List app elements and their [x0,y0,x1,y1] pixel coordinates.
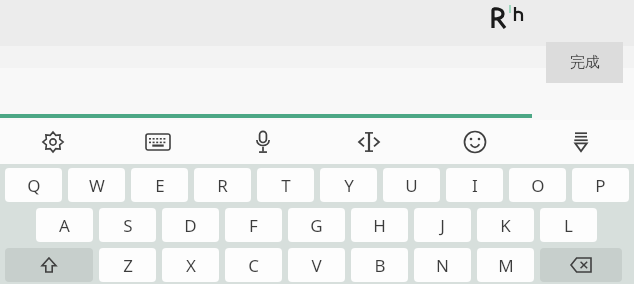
button[interactable]: L [540,208,597,242]
staticText: W [89,174,105,197]
button[interactable]: E [131,168,188,202]
button[interactable]: U [383,168,440,202]
button[interactable]: Q [5,168,62,202]
button[interactable]: G [288,208,345,242]
staticText: I [472,174,478,197]
staticText: F [249,214,258,237]
button[interactable]: P [572,168,629,202]
button[interactable]: O [509,168,566,202]
staticText: V [311,254,322,277]
button[interactable]: Z [99,248,156,282]
staticText: T [281,174,291,197]
button[interactable]: Settings [0,120,105,164]
staticText: D [184,214,197,237]
staticText: H [373,214,386,237]
staticText: J [440,214,445,237]
button[interactable]: F [225,208,282,242]
staticText: 完成 [570,53,600,72]
button[interactable]: A [36,208,93,242]
button[interactable]: 完成 [546,42,623,83]
staticText: U [405,174,418,197]
button[interactable]: W [68,168,125,202]
button[interactable]: D [162,208,219,242]
button[interactable]: K [477,208,534,242]
staticText: N [436,254,449,277]
button[interactable]: I [446,168,503,202]
button[interactable]: Y [320,168,377,202]
button[interactable]: T [257,168,314,202]
button[interactable]: S [99,208,156,242]
button[interactable]: Emoji [422,120,528,164]
staticText: K [500,214,511,237]
staticText: M [498,254,514,277]
staticText: X [186,254,196,277]
staticText: A [59,214,70,237]
button[interactable]: B [351,248,408,282]
button[interactable]: R [194,168,251,202]
staticText: L [564,214,573,237]
button[interactable]: Keyboard layout [105,120,210,164]
staticText: Y [344,174,354,197]
button[interactable]: Voice input [210,120,316,164]
button[interactable]: N [414,248,471,282]
staticText: R [217,174,228,197]
staticText: Q [27,174,41,197]
staticText: C [248,254,259,277]
button[interactable]: Move cursor [316,120,422,164]
button[interactable]: Backspace [540,248,622,282]
staticText: Z [123,254,133,277]
button[interactable]: Hide keyboard [528,120,634,164]
button[interactable]: H [351,208,408,242]
button[interactable]: Shift [5,248,93,282]
button[interactable]: C [225,248,282,282]
staticText: G [310,214,323,237]
staticText: B [374,254,386,277]
button[interactable]: J [414,208,471,242]
button[interactable]: M [477,248,534,282]
button[interactable]: V [288,248,345,282]
staticText: P [595,174,606,197]
staticText: E [155,174,165,197]
button[interactable]: X [162,248,219,282]
staticText: S [123,214,133,237]
staticText: O [531,174,545,197]
